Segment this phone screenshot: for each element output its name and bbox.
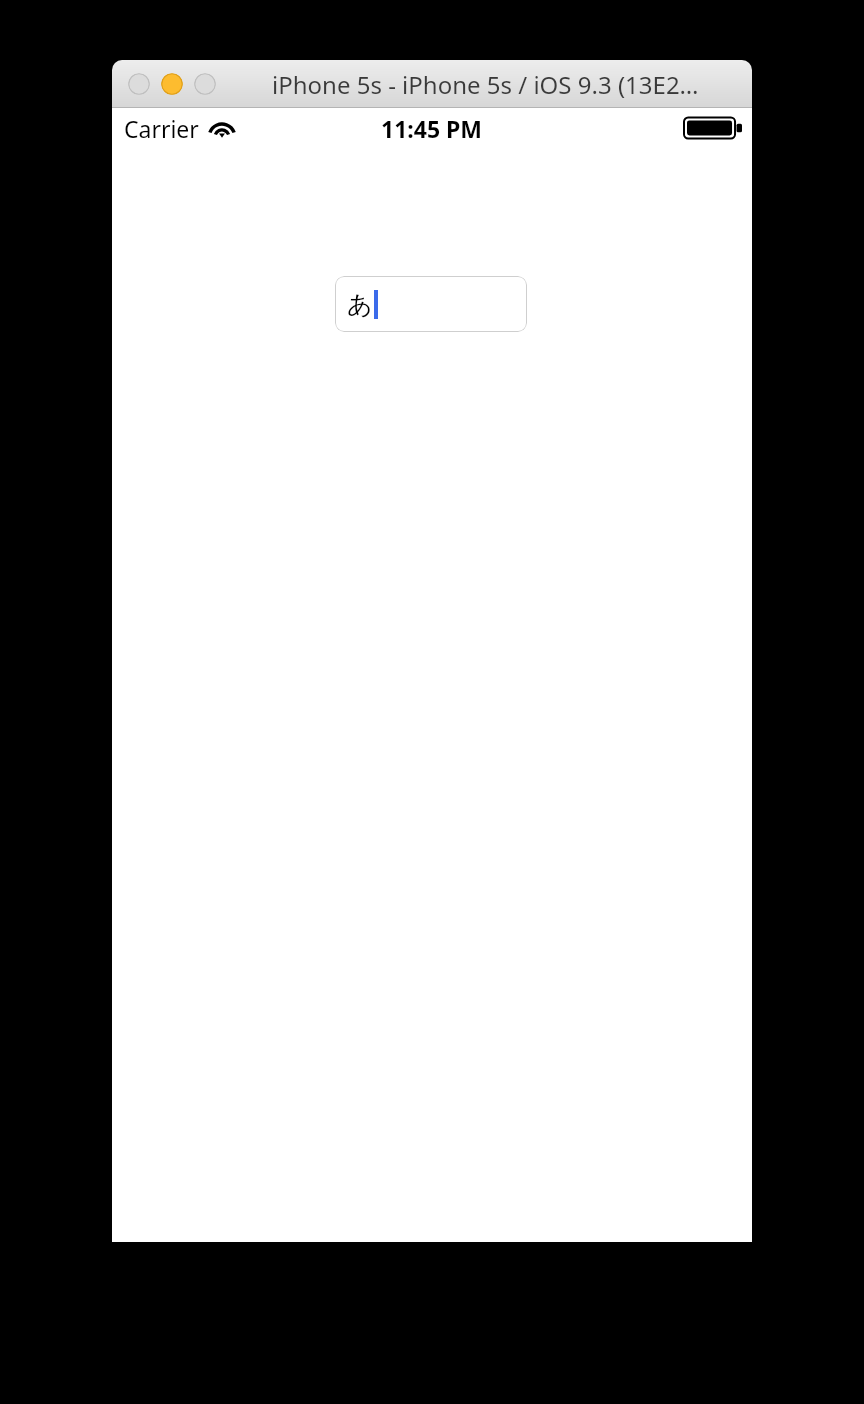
staticText: あ xyxy=(347,289,373,320)
button[interactable]: あ xyxy=(335,276,527,332)
staticText: 11:45 PM xyxy=(381,113,483,144)
other: Battery full xyxy=(684,115,742,141)
other: Wi-Fi xyxy=(208,118,236,140)
staticText: Carrier xyxy=(124,113,199,144)
staticText: iPhone 5s - iPhone 5s / iOS 9.3 (13E2… xyxy=(272,68,699,101)
button[interactable]: Minimize xyxy=(161,73,183,95)
button[interactable]: Zoom xyxy=(194,73,216,95)
button[interactable]: Close xyxy=(128,73,150,95)
